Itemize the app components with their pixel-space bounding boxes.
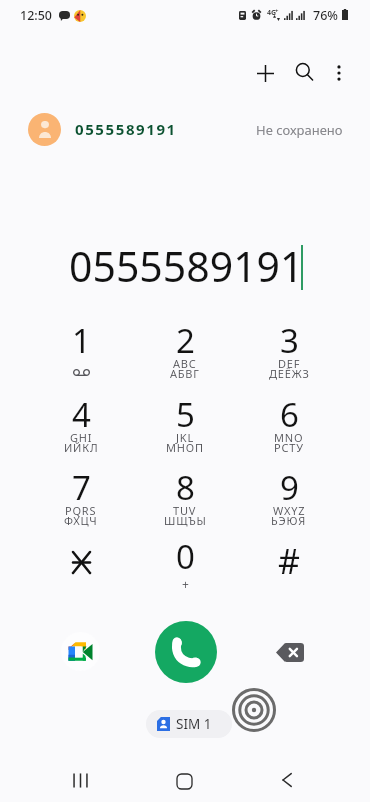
button[interactable]: 1 (29, 318, 133, 384)
staticText: 7 (72, 465, 91, 510)
button[interactable]: Home (162, 759, 206, 802)
button[interactable]: 0555589191 (0, 108, 370, 152)
staticText: ДЕЁЖЗ (269, 366, 310, 381)
staticText: + (275, 7, 279, 15)
staticText: 12:50 (20, 7, 53, 24)
staticText: 0555589191 (75, 119, 177, 139)
button[interactable]: Recents (58, 758, 102, 802)
button[interactable]: Backspace (269, 636, 310, 669)
button[interactable]: 7 (29, 465, 133, 531)
staticText: 76% (313, 7, 338, 24)
staticText: РСТУ (274, 440, 304, 455)
staticText: 0555589191 (69, 238, 304, 294)
staticText: 4G (267, 8, 277, 18)
staticText: 5 (176, 392, 195, 437)
button[interactable] (29, 534, 133, 600)
button[interactable]: 3 (237, 318, 341, 384)
staticText: Не сохранено (256, 121, 343, 139)
staticText: 6 (280, 392, 299, 437)
button[interactable]: Back (265, 758, 309, 802)
staticText: ШЩЪЫ (164, 513, 207, 528)
staticText: 0 (176, 534, 195, 579)
staticText: 2 (176, 318, 195, 363)
staticText: SIM 1 (176, 715, 212, 733)
button[interactable]: Video call (61, 632, 100, 671)
staticText: PQRS (65, 503, 97, 518)
button[interactable]: 8 (133, 465, 237, 531)
staticText: МНОП (166, 440, 204, 455)
staticText: 3 (280, 318, 299, 363)
button[interactable]: Call (155, 621, 217, 683)
button[interactable]: 0 (133, 534, 237, 600)
button[interactable]: SIM 1 (146, 710, 232, 738)
staticText: TUV (173, 503, 197, 518)
staticText: MNO (274, 430, 304, 445)
staticText: ЬЭЮЯ (271, 513, 307, 528)
staticText: JKL (176, 430, 194, 445)
button[interactable]: 5 (133, 392, 237, 458)
staticText: АБВГ (170, 366, 200, 381)
staticText: ФХЦЧ (64, 513, 98, 528)
button[interactable]: Search (282, 51, 326, 95)
button[interactable]: # (237, 534, 341, 600)
staticText: 9 (280, 465, 299, 510)
button[interactable]: 9 (237, 465, 341, 531)
staticText: 8 (176, 465, 195, 510)
button[interactable]: Add contact (243, 51, 287, 95)
staticText: ИЙКЛ (64, 440, 99, 455)
button[interactable]: 6 (237, 392, 341, 458)
button[interactable]: More options (317, 51, 361, 95)
staticText: WXYZ (273, 503, 306, 518)
staticText: 1 (72, 318, 91, 363)
staticText: + (182, 576, 189, 592)
button[interactable]: 2 (133, 318, 237, 384)
staticText: # (278, 538, 300, 584)
button[interactable]: 4 (29, 392, 133, 458)
staticText: GHI (70, 430, 93, 445)
staticText: 4 (72, 392, 91, 437)
staticText: ABC (173, 356, 197, 371)
staticText: DEF (278, 356, 301, 371)
